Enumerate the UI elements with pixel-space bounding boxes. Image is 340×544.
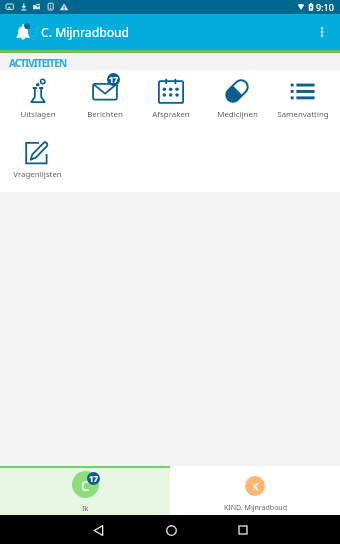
staticText: K <box>252 479 259 494</box>
staticText: ACTIVITEITEN <box>9 56 67 70</box>
button[interactable]: Afspraken <box>138 70 204 132</box>
staticText: 9:10 <box>316 1 334 13</box>
button[interactable]: Home <box>157 516 185 544</box>
staticText: KIND. Mijnradboud <box>224 503 287 513</box>
staticText: C. Mijnradboud <box>41 24 130 41</box>
button[interactable]: Uitslagen <box>4 70 71 132</box>
staticText: Vragenlijsten <box>13 169 62 180</box>
button[interactable]: Vragenlijsten <box>4 132 70 192</box>
button[interactable]: Samenvatting <box>270 70 336 132</box>
staticText: Uitslagen <box>20 109 56 120</box>
button[interactable]: Recent apps <box>229 516 257 544</box>
button[interactable]: Back <box>84 516 112 544</box>
staticText: Afspraken <box>152 109 190 120</box>
button[interactable]: 17 <box>71 70 138 132</box>
staticText: Ik <box>82 503 89 513</box>
staticText: Berichten <box>87 109 123 120</box>
staticText: 17 <box>109 74 119 85</box>
button[interactable]: More options <box>310 20 334 44</box>
staticText: 17 <box>89 473 99 484</box>
button[interactable]: C <box>0 466 170 515</box>
button[interactable]: Notifications <box>14 23 32 41</box>
staticText: Medicijnen <box>217 109 258 120</box>
button[interactable]: K <box>170 466 340 515</box>
staticText: Samenvatting <box>277 109 329 120</box>
button[interactable]: Medicijnen <box>204 70 270 132</box>
staticText: C <box>81 477 90 495</box>
